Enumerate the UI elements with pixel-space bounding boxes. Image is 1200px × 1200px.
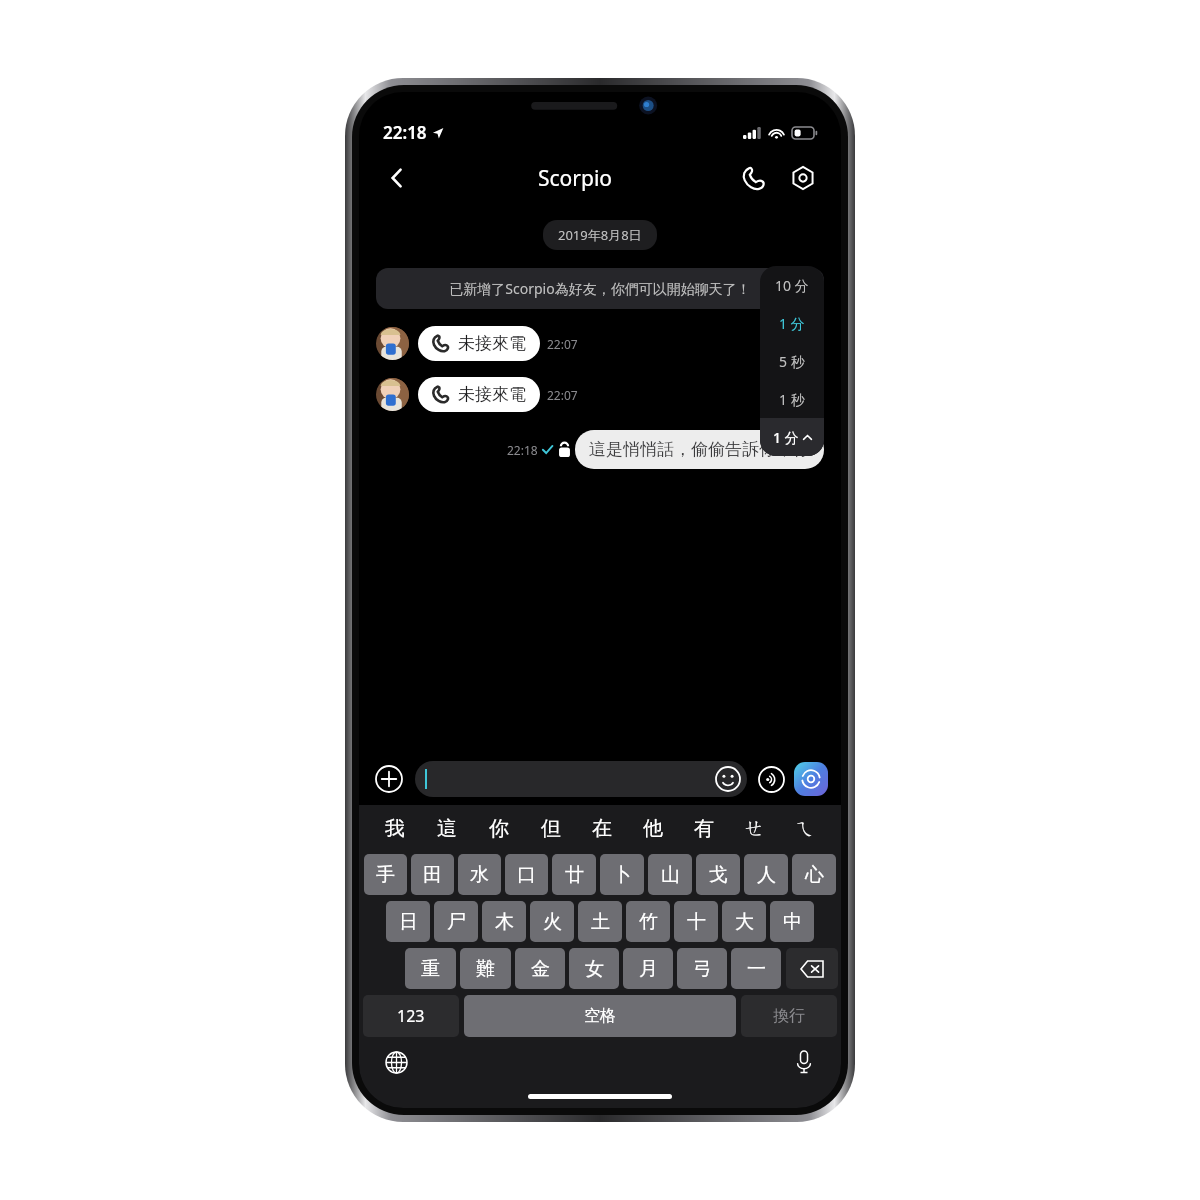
staticText: 22:07 — [547, 387, 578, 403]
button[interactable]: 5 秒 — [760, 342, 824, 380]
staticText: 他 — [643, 816, 663, 841]
staticText: 卜 — [613, 863, 632, 887]
button[interactable]: 1 秒 — [760, 380, 824, 418]
staticText: 人 — [757, 863, 776, 887]
staticText: 月 — [639, 957, 658, 981]
staticText: 十 — [687, 910, 706, 934]
staticText: 這 — [437, 816, 457, 841]
button[interactable]: ㄝ — [729, 805, 780, 851]
button[interactable]: 換行 — [741, 995, 837, 1037]
button[interactable]: 大 — [722, 901, 766, 942]
button[interactable]: 中 — [770, 901, 814, 942]
button[interactable]: 日 — [386, 901, 430, 942]
staticText: 10 分 — [775, 276, 809, 295]
button[interactable]: 口 — [505, 854, 548, 895]
button[interactable]: Settings — [781, 156, 825, 200]
button[interactable]: 戈 — [696, 854, 740, 895]
staticText: 你 — [489, 816, 509, 841]
button[interactable]: Dictation — [787, 1045, 821, 1079]
button[interactable]: Change keyboard — [379, 1045, 413, 1079]
staticText: 未接來電 — [458, 333, 526, 354]
button[interactable]: 田 — [411, 854, 454, 895]
staticText: 火 — [543, 910, 562, 934]
staticText: 女 — [585, 957, 604, 981]
staticText: 難 — [476, 957, 495, 981]
button[interactable]: 他 — [627, 805, 678, 851]
button[interactable]: 有 — [678, 805, 729, 851]
staticText: ㄟ — [795, 816, 816, 841]
button[interactable]: 你 — [473, 805, 525, 851]
button[interactable]: 心 — [792, 854, 836, 895]
button[interactable]: 土 — [578, 901, 622, 942]
staticText: 金 — [531, 957, 550, 981]
staticText: Scorpio — [538, 164, 613, 193]
staticText: 22:18 — [507, 442, 538, 458]
button[interactable]: 月 — [623, 948, 673, 989]
button[interactable]: 竹 — [626, 901, 670, 942]
button[interactable]: 廿 — [552, 854, 596, 895]
staticText: 木 — [495, 910, 514, 934]
staticText: 重 — [421, 957, 440, 981]
button[interactable]: 在 — [576, 805, 627, 851]
button[interactable]: 弓 — [677, 948, 727, 989]
staticText: 中 — [783, 910, 802, 934]
button[interactable]: 女 — [569, 948, 619, 989]
staticText: 123 — [397, 1005, 425, 1027]
button[interactable]: Back — [375, 156, 419, 200]
button[interactable]: 這是悄悄話，偷偷告訴你，你 — [575, 430, 824, 469]
button[interactable]: Backspace — [786, 948, 838, 989]
button[interactable]: Add attachment — [372, 762, 406, 796]
button[interactable]: 未接來電 — [418, 326, 540, 361]
button[interactable]: 10 分 — [760, 266, 824, 304]
button[interactable]: 未接來電 — [418, 377, 540, 412]
button[interactable]: Call — [731, 156, 775, 200]
staticText: 22:07 — [547, 336, 578, 352]
staticText: 我 — [385, 816, 405, 841]
button[interactable]: 一 — [731, 948, 781, 989]
staticText: 一 — [747, 957, 766, 981]
button[interactable]: 十 — [674, 901, 718, 942]
button[interactable]: 1 分 — [760, 304, 824, 342]
button[interactable]: ㄟ — [780, 805, 831, 851]
button[interactable]: 我 — [369, 805, 421, 851]
button[interactable]: 這 — [421, 805, 473, 851]
staticText: 竹 — [639, 910, 658, 934]
button[interactable]: 手 — [364, 854, 407, 895]
button[interactable]: Voice message — [754, 762, 788, 796]
staticText: 但 — [541, 816, 561, 841]
staticText: 土 — [591, 910, 610, 934]
staticText: 1 分 — [773, 428, 799, 447]
button[interactable]: 水 — [458, 854, 501, 895]
staticText: 1 秒 — [779, 390, 805, 409]
button[interactable]: 重 — [405, 948, 456, 989]
button[interactable]: 123 — [363, 995, 459, 1037]
button[interactable]: 金 — [515, 948, 565, 989]
button[interactable]: 難 — [460, 948, 511, 989]
button[interactable]: Switch camera — [794, 762, 828, 796]
staticText: 心 — [805, 863, 824, 887]
button[interactable]: 1 分 — [760, 418, 824, 456]
staticText: 已新增了Scorpio為好友，你們可以開始聊天了！ — [449, 279, 751, 298]
staticText: 日 — [399, 910, 418, 934]
staticText: 手 — [376, 863, 395, 887]
staticText: 空格 — [584, 1006, 616, 1026]
button[interactable]: 木 — [482, 901, 526, 942]
staticText: 山 — [661, 863, 680, 887]
staticText: 尸 — [447, 910, 466, 934]
staticText: 在 — [592, 816, 612, 841]
button[interactable]: 但 — [525, 805, 576, 851]
button[interactable]: 空格 — [464, 995, 736, 1037]
staticText: 戈 — [709, 863, 728, 887]
staticText: 這是悄悄話，偷偷告訴你，你 — [589, 439, 810, 460]
staticText: 5 秒 — [779, 352, 805, 371]
staticText: 有 — [694, 816, 714, 841]
staticText: 大 — [735, 910, 754, 934]
button[interactable] — [415, 761, 747, 797]
button[interactable]: 火 — [530, 901, 574, 942]
staticText: 口 — [517, 863, 536, 887]
button[interactable]: 卜 — [600, 854, 644, 895]
button[interactable]: 人 — [744, 854, 788, 895]
button[interactable]: 尸 — [434, 901, 478, 942]
staticText: 2019年8月8日 — [558, 226, 642, 244]
button[interactable]: 山 — [648, 854, 692, 895]
